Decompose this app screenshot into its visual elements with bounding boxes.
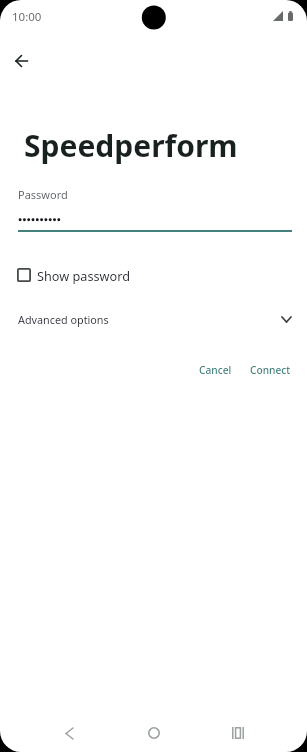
button[interactable]: Home	[139, 718, 169, 748]
staticText: Advanced options	[18, 312, 109, 327]
staticText: Speedperform	[24, 125, 238, 166]
button[interactable]: Back	[54, 718, 84, 748]
button[interactable]: Show password	[17, 263, 131, 287]
staticText: Password	[18, 187, 68, 202]
button[interactable]: Navigate up	[5, 45, 37, 77]
button[interactable]: Connect	[242, 359, 299, 381]
staticText: 10:00	[12, 9, 42, 25]
staticText: Cancel	[199, 363, 232, 377]
button[interactable]: Recent apps	[223, 718, 253, 748]
button[interactable]: Cancel	[191, 359, 240, 381]
button[interactable]: Advanced options	[0, 307, 307, 331]
staticText: Connect	[250, 363, 291, 377]
staticText: Show password	[37, 267, 131, 284]
